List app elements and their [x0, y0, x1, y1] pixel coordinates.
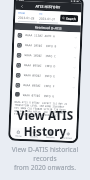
button[interactable]: FROM	[18, 11, 37, 24]
staticText: VIS 10KM CLD FEW020 SCT120 T28 DP23	[14, 106, 66, 111]
button[interactable]: Settings	[59, 130, 76, 141]
button[interactable]: WAAA 1020Z INFO C	[13, 50, 80, 62]
staticText: ATIS HISTORY	[35, 3, 61, 9]
button[interactable]: Notams	[42, 129, 59, 141]
staticText: View D-ATIS historical records from 2020…	[5, 145, 85, 172]
button[interactable]: Back	[18, 3, 25, 9]
staticText: TRANSITION LEVEL 130 WIND 210/08KT	[14, 103, 64, 108]
staticText: 2023-01-28	[18, 16, 35, 20]
staticText: WAAA 0950Z INFO D	[24, 63, 56, 68]
staticText: WAAA 1120Z AUTO A	[25, 33, 55, 38]
button[interactable]: TO	[39, 12, 58, 24]
staticText: Search	[66, 17, 76, 21]
staticText: WAAA 1020Z INFO C	[24, 53, 57, 58]
staticText: QNH 1011 HPA NOSIG ACK INFO G ON	[14, 109, 63, 114]
staticText: FROM	[18, 12, 25, 15]
staticText: WAAA ATIS G 0750Z EXPECT ILS RWY 21	[15, 100, 68, 105]
button[interactable]: WAAA 0950Z INFO D	[13, 60, 79, 72]
staticText: Routes	[30, 135, 38, 138]
button[interactable]: WAAA 1050Z INFO B	[14, 40, 80, 52]
button[interactable]: Search	[60, 15, 78, 22]
staticText: 9:05	[19, 0, 24, 1]
staticText: WAAA 0920Z INFO E	[24, 73, 56, 78]
staticText: Settings	[63, 137, 72, 139]
staticText: WAAA 0750Z INFO G	[23, 93, 55, 98]
button[interactable]: WAAA 1120Z AUTO A	[14, 30, 81, 42]
button[interactable]: WAAA 0920Z INFO E	[12, 70, 79, 82]
staticText: WAAA 1050Z INFO B	[25, 43, 57, 48]
staticText: WAAA 0850Z INFO F	[23, 83, 55, 88]
staticText: View ATIS History	[5, 108, 85, 140]
button[interactable]: WAAA 0750Z INFO G	[11, 90, 78, 118]
staticText: TO	[39, 13, 43, 16]
staticText: Notams	[46, 136, 55, 138]
staticText: Retrieved D-ATIS	[35, 25, 62, 31]
staticText: FIRST CONTACT WITH APPROACH CTL	[14, 112, 60, 117]
button[interactable]: WAAA 0850Z INFO F	[12, 80, 78, 92]
staticText: 2023-01-31	[39, 17, 56, 21]
staticText: Home	[15, 135, 22, 137]
button[interactable]: Home	[10, 128, 26, 139]
button[interactable]: Routes	[26, 128, 42, 140]
